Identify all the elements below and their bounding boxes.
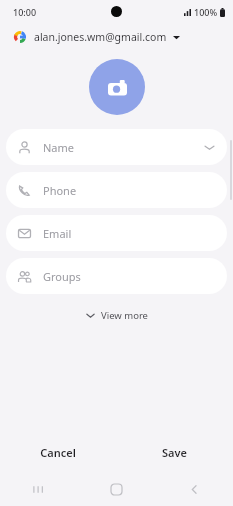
button[interactable]: Recents — [0, 472, 77, 506]
button[interactable]: Groups — [6, 258, 227, 294]
button[interactable]: alan.jones.wm@gmail.com — [0, 24, 233, 50]
staticText: 100% — [194, 6, 218, 18]
staticText: Phone — [43, 183, 77, 198]
staticText: Groups — [43, 269, 81, 284]
staticText: 10:00 — [13, 6, 37, 18]
staticText: Email — [43, 226, 72, 241]
staticText: View more — [101, 309, 148, 322]
button[interactable]: Phone — [6, 172, 227, 208]
button[interactable]: Back — [155, 472, 233, 506]
button[interactable]: Name — [6, 129, 227, 165]
staticText: Save — [162, 445, 187, 460]
staticText: Cancel — [40, 445, 76, 460]
staticText: Name — [43, 140, 75, 155]
button[interactable]: Save — [116, 432, 233, 472]
button[interactable]: Change photo — [89, 59, 145, 115]
button[interactable]: Email — [6, 215, 227, 251]
button[interactable]: Home — [77, 472, 155, 506]
staticText: alan.jones.wm@gmail.com — [34, 30, 167, 44]
button[interactable]: View more — [76, 305, 158, 326]
button[interactable]: Cancel — [0, 432, 116, 472]
